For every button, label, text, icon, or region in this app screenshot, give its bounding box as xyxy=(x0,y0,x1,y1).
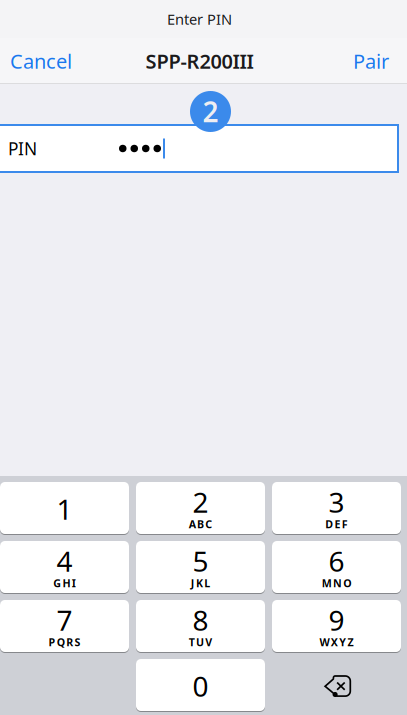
staticText: 3 xyxy=(328,483,344,521)
staticText: PIN xyxy=(8,137,37,160)
staticText: DEF xyxy=(325,517,348,531)
staticText: 8 xyxy=(192,601,208,639)
staticText: Pair xyxy=(353,48,389,74)
staticText: 0 xyxy=(192,667,208,705)
button[interactable]: 4 xyxy=(0,541,129,593)
button[interactable]: 8 xyxy=(136,600,265,652)
button[interactable]: 3 xyxy=(272,482,401,534)
staticText: 4 xyxy=(56,542,72,580)
button[interactable]: 6 xyxy=(272,541,401,593)
button[interactable]: Delete xyxy=(272,659,401,711)
button[interactable]: 0 xyxy=(136,659,265,711)
button[interactable]: Pair xyxy=(353,42,407,80)
staticText: SPP-R200III xyxy=(145,48,253,74)
staticText: MNO xyxy=(322,576,351,590)
staticText: 2 xyxy=(192,483,208,521)
staticText: ABC xyxy=(189,517,212,531)
staticText: Cancel xyxy=(10,48,72,74)
staticText: 6 xyxy=(328,542,344,580)
staticText: Enter PIN xyxy=(167,9,232,29)
button[interactable]: 1 xyxy=(0,482,129,534)
staticText: 7 xyxy=(56,601,72,639)
staticText: PQRS xyxy=(49,635,80,649)
staticText: WXYZ xyxy=(320,635,353,649)
staticText: 9 xyxy=(328,601,344,639)
button[interactable]: Cancel xyxy=(0,42,72,80)
staticText: 5 xyxy=(192,542,208,580)
button[interactable]: 7 xyxy=(0,600,129,652)
staticText: GHI xyxy=(53,576,76,590)
button[interactable]: 5 xyxy=(136,541,265,593)
button[interactable]: 9 xyxy=(272,600,401,652)
staticText: TUV xyxy=(189,635,212,649)
staticText: 1 xyxy=(56,490,72,528)
button[interactable]: 2 xyxy=(136,482,265,534)
staticText: JKL xyxy=(191,576,210,590)
staticText: 2 xyxy=(202,93,218,130)
